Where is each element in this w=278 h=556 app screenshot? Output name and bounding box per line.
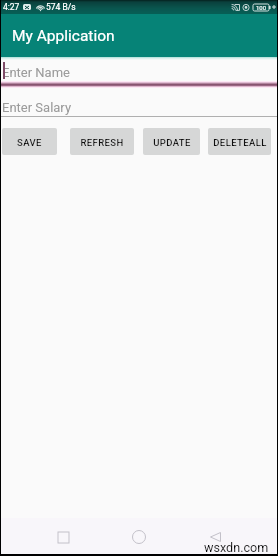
staticText: 4:27	[3, 2, 20, 12]
staticText: Enter Name	[2, 65, 70, 80]
staticText: 100	[256, 4, 267, 11]
staticText: SAVE	[17, 137, 42, 148]
staticText: DELETEALL	[213, 137, 267, 148]
button[interactable]: Back	[200, 522, 230, 552]
staticText: wsxdn.com	[204, 540, 269, 555]
button[interactable]: UPDATE	[143, 128, 200, 155]
staticText: Enter Salary	[2, 100, 72, 115]
button[interactable]: Home	[124, 522, 154, 552]
button[interactable]: SAVE	[2, 128, 57, 155]
staticText: REFRESH	[80, 137, 124, 148]
staticText: UPDATE	[153, 137, 191, 148]
button[interactable]: REFRESH	[70, 128, 134, 155]
button[interactable]: DELETEALL	[208, 128, 271, 155]
button[interactable]: Recents	[48, 522, 78, 552]
staticText: 574 B/s	[46, 2, 76, 12]
staticText: My Application	[12, 27, 115, 45]
